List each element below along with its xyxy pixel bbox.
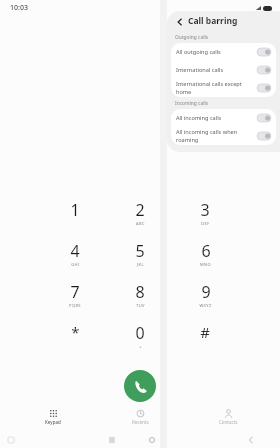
button[interactable]: 1 xyxy=(49,199,101,231)
button[interactable]: Contacts xyxy=(193,407,263,427)
staticText: 8 xyxy=(135,281,145,303)
button[interactable]: 8 xyxy=(114,281,166,313)
staticText: ABC xyxy=(136,221,145,226)
button[interactable]: All incoming calls when roaming xyxy=(171,127,276,145)
staticText: All incoming calls when roaming xyxy=(176,128,255,144)
staticText: GHI xyxy=(71,262,80,267)
button[interactable]: Call xyxy=(124,370,156,402)
staticText: Outgoing calls xyxy=(175,34,209,41)
button[interactable]: 7 xyxy=(49,281,101,313)
staticText: # xyxy=(200,322,210,342)
staticText: 4 xyxy=(70,240,80,262)
button[interactable]: Recents xyxy=(105,407,175,427)
button[interactable]: * xyxy=(49,322,101,354)
staticText: JKL xyxy=(137,262,144,267)
staticText: 9 xyxy=(201,281,211,303)
button[interactable]: 2 xyxy=(114,199,166,231)
button[interactable]: 4 xyxy=(49,240,101,272)
staticText: All incoming calls xyxy=(176,114,255,122)
staticText: MNO xyxy=(200,262,211,267)
staticText: 7 xyxy=(70,281,80,303)
staticText: 10:03 xyxy=(10,3,28,13)
button[interactable]: Toggle xyxy=(257,84,271,92)
staticText: International calls except home xyxy=(176,80,255,96)
staticText: 6 xyxy=(201,240,211,262)
button[interactable]: Toggle xyxy=(257,48,271,56)
staticText: Recents xyxy=(132,419,149,425)
staticText: International calls xyxy=(176,66,255,74)
staticText: 2 xyxy=(135,199,145,221)
button[interactable]: All outgoing calls xyxy=(171,43,276,61)
staticText: Incoming calls xyxy=(175,100,209,107)
staticText: 1 xyxy=(70,199,80,221)
button[interactable]: 9 xyxy=(179,281,231,313)
button[interactable]: 0 xyxy=(114,322,166,354)
button[interactable]: # xyxy=(179,322,231,354)
button[interactable]: Toggle xyxy=(257,132,271,140)
staticText: Contacts xyxy=(219,419,238,425)
staticText: DEF xyxy=(201,221,210,226)
staticText: WXYZ xyxy=(199,303,212,308)
button[interactable]: 6 xyxy=(179,240,231,272)
staticText: TUV xyxy=(136,303,145,308)
staticText: Keypad xyxy=(45,419,61,425)
staticText: + xyxy=(139,344,142,349)
staticText: 0 xyxy=(135,322,145,344)
button[interactable]: 3 xyxy=(179,199,231,231)
staticText: All outgoing calls xyxy=(176,48,255,56)
button[interactable]: Back xyxy=(174,16,185,27)
button[interactable]: All incoming calls xyxy=(171,109,276,127)
button[interactable]: Toggle xyxy=(257,66,271,74)
button[interactable]: Keypad xyxy=(18,407,88,427)
button[interactable]: International calls xyxy=(171,61,276,79)
button[interactable]: 5 xyxy=(114,240,166,272)
staticText: PQRS xyxy=(69,303,81,308)
button[interactable]: Toggle xyxy=(257,114,271,122)
staticText: 3 xyxy=(200,199,210,221)
staticText: 5 xyxy=(135,240,145,262)
button[interactable]: International calls except home xyxy=(171,79,276,97)
staticText: Call barring xyxy=(188,15,238,27)
staticText: * xyxy=(71,322,80,342)
